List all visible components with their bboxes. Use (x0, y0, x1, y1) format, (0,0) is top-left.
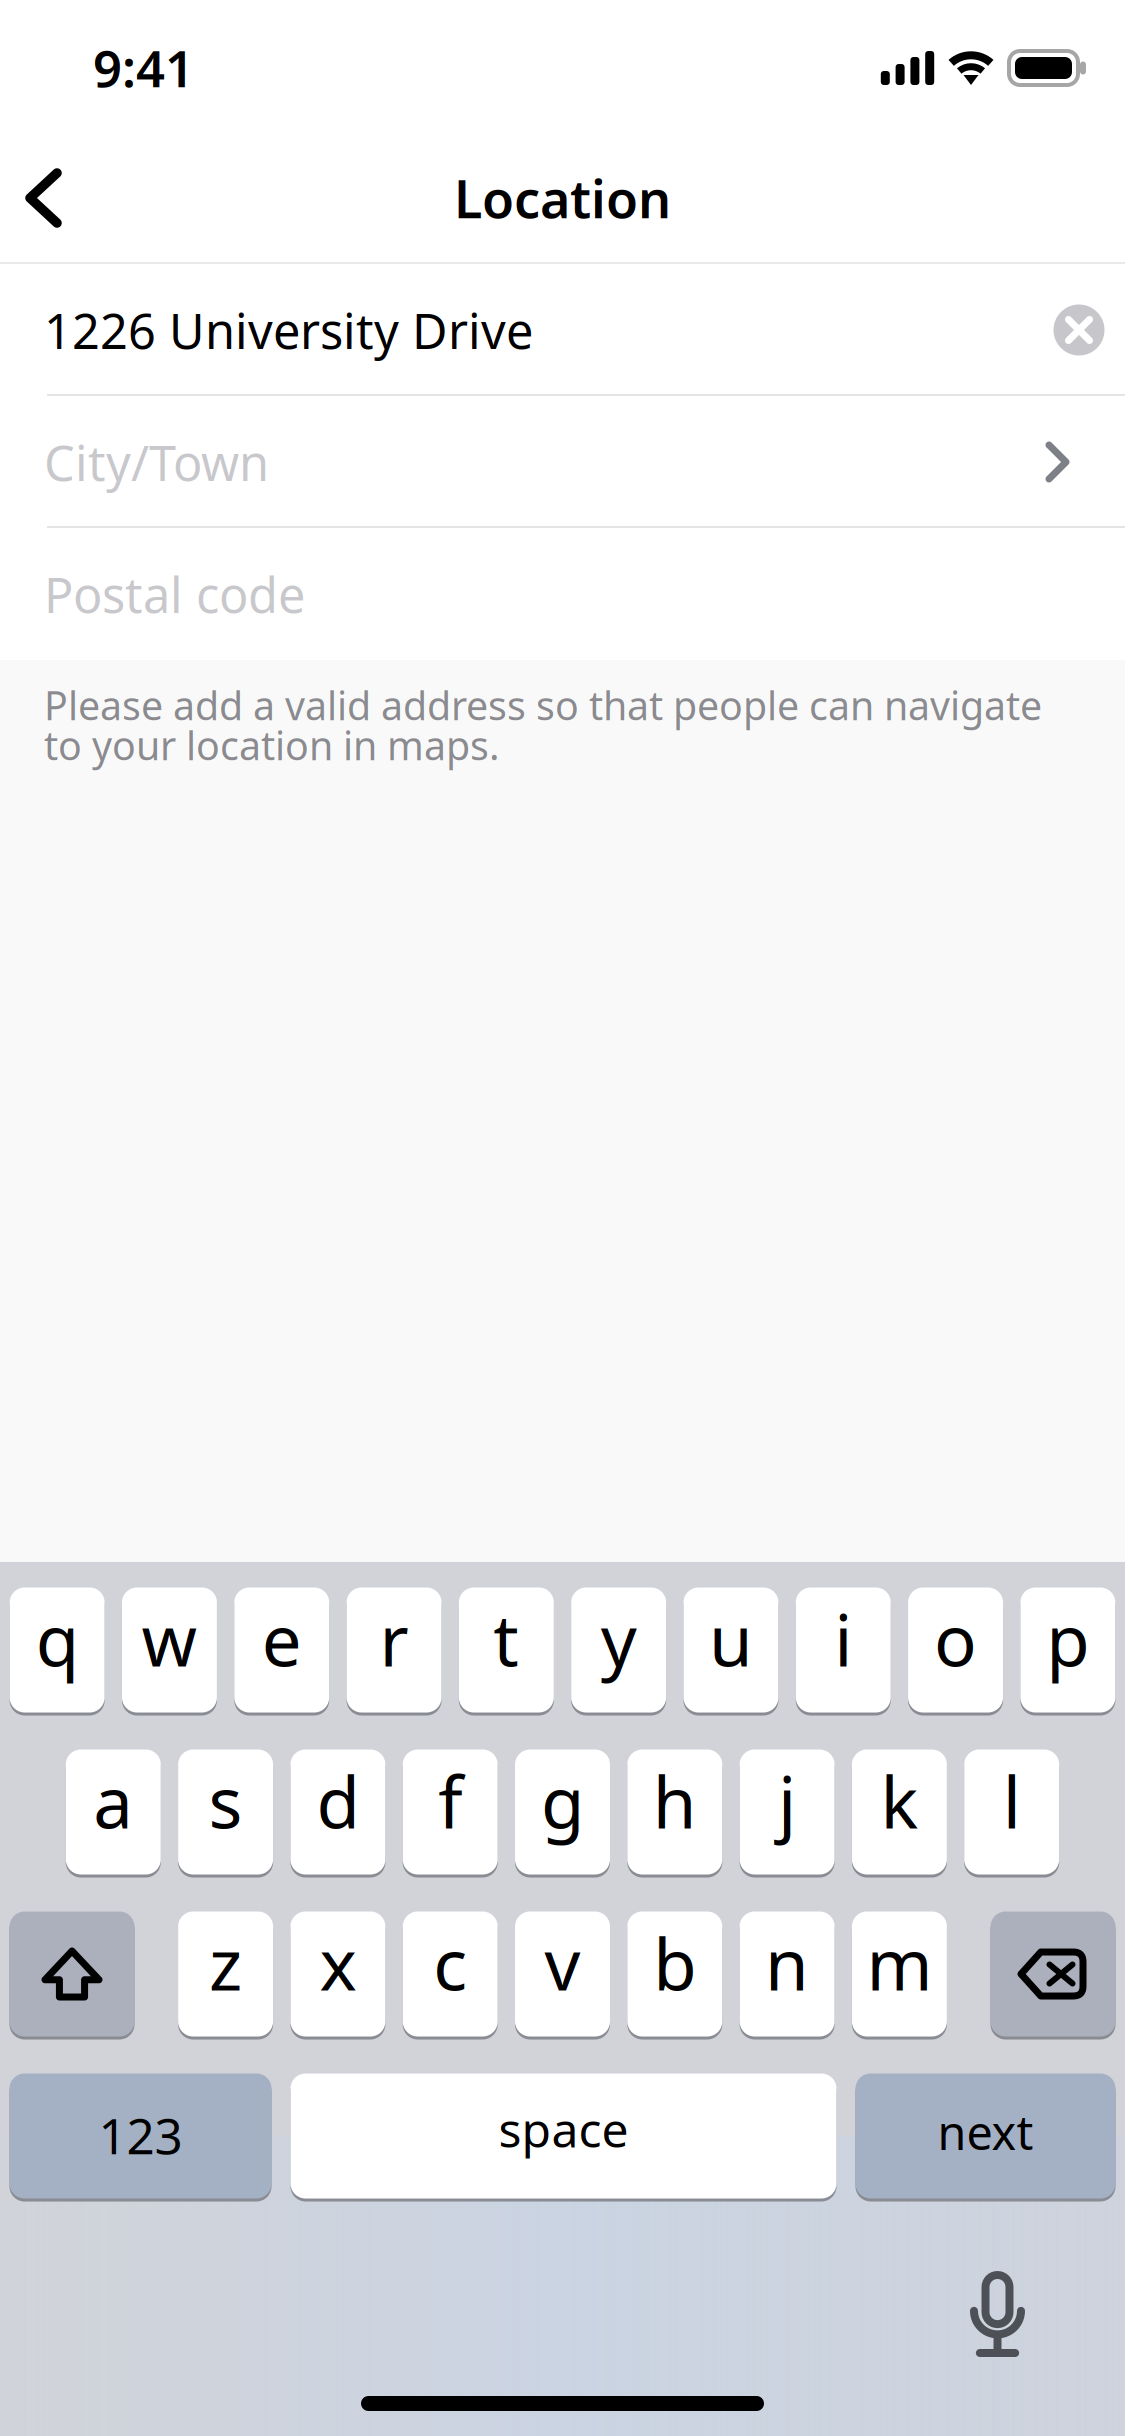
button[interactable]: j (740, 1748, 835, 1876)
staticText: s (209, 1753, 243, 1849)
staticText: Location (454, 163, 671, 233)
button[interactable]: x (290, 1910, 385, 2038)
button[interactable]: q (10, 1586, 105, 1714)
staticText: b (653, 1915, 696, 2011)
staticText: c (433, 1915, 467, 2011)
button[interactable]: 123 (9, 2072, 271, 2200)
staticText: City/Town (44, 429, 269, 495)
staticText: 9:41 (93, 33, 194, 102)
button[interactable]: b (627, 1910, 722, 2038)
button[interactable]: t (459, 1586, 554, 1714)
button[interactable]: next (855, 2072, 1115, 2200)
button[interactable]: z (178, 1910, 273, 2038)
staticText: h (653, 1753, 697, 1849)
staticText: u (709, 1591, 753, 1687)
staticText: e (262, 1591, 302, 1687)
button[interactable]: l (964, 1748, 1059, 1876)
staticText: Please add a valid address so that peopl… (44, 685, 1042, 765)
button[interactable]: c (403, 1910, 498, 2038)
staticText: o (934, 1591, 977, 1687)
staticText: Postal code (44, 561, 305, 627)
button[interactable]: i (796, 1586, 891, 1714)
staticText: r (379, 1591, 408, 1687)
staticText: t (493, 1591, 519, 1687)
button[interactable]: Back (0, 141, 100, 255)
button[interactable]: r (346, 1586, 441, 1714)
staticText: l (1003, 1753, 1021, 1849)
button[interactable]: m (852, 1910, 947, 2038)
button[interactable]: v (515, 1910, 610, 2038)
button[interactable]: Choose city (1023, 420, 1117, 504)
staticText: g (541, 1753, 584, 1849)
button[interactable]: p (1020, 1586, 1115, 1714)
staticText: m (866, 1915, 932, 2011)
button[interactable]: e (234, 1586, 329, 1714)
button[interactable]: w (122, 1586, 217, 1714)
staticText: y (601, 1591, 637, 1687)
button[interactable]: s (178, 1748, 273, 1876)
staticText: z (209, 1915, 242, 2011)
button[interactable]: Shift (9, 1910, 134, 2038)
staticText: n (765, 1915, 809, 2011)
button[interactable]: g (515, 1748, 610, 1876)
button[interactable]: y (571, 1586, 666, 1714)
button[interactable]: Dictate (950, 2251, 1045, 2377)
staticText: k (880, 1753, 918, 1849)
button[interactable]: n (740, 1910, 835, 2038)
button[interactable]: space (290, 2072, 836, 2200)
staticText: i (834, 1591, 852, 1687)
staticText: 123 (98, 2101, 182, 2169)
staticText: 1226 University Drive (44, 297, 533, 363)
button[interactable]: u (683, 1586, 778, 1714)
staticText: v (544, 1915, 580, 2011)
button[interactable]: h (627, 1748, 722, 1876)
button[interactable]: d (290, 1748, 385, 1876)
staticText: f (438, 1753, 462, 1849)
staticText: x (319, 1915, 356, 2011)
staticText: w (141, 1591, 197, 1687)
staticText: d (316, 1753, 359, 1849)
staticText: p (1046, 1591, 1089, 1687)
button[interactable]: Delete (990, 1910, 1115, 2038)
button[interactable]: Clear text (1041, 292, 1117, 368)
staticText: a (93, 1753, 133, 1849)
button[interactable]: a (66, 1748, 161, 1876)
button[interactable]: f (403, 1748, 498, 1876)
staticText: space (498, 2096, 628, 2162)
staticText: q (36, 1591, 79, 1687)
staticText: j (778, 1753, 796, 1849)
button[interactable]: o (908, 1586, 1003, 1714)
button[interactable]: k (852, 1748, 947, 1876)
staticText: next (937, 2100, 1033, 2164)
